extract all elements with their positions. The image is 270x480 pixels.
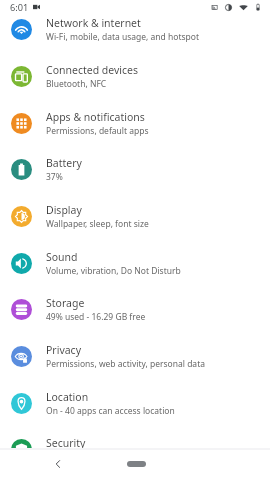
staticText: Wi-Fi, mobile, data usage, and hotspot [46, 31, 199, 43]
staticText: Permissions, web activity, personal data [46, 358, 205, 370]
staticText: Display [46, 203, 82, 217]
staticText: Wallpaper, sleep, font size [46, 218, 149, 230]
staticText: Sound [46, 250, 78, 264]
staticText: Security [46, 436, 86, 449]
staticText: Location [46, 390, 89, 404]
button[interactable]: Storage [0, 286, 270, 333]
button[interactable]: Apps & notifications [0, 100, 270, 147]
button[interactable]: Connected devices [0, 53, 270, 100]
staticText: On - 40 apps can access location [46, 405, 175, 417]
button[interactable]: Home [127, 461, 146, 467]
staticText: Privacy [46, 343, 82, 357]
button[interactable]: Security [0, 426, 270, 449]
button[interactable]: Display [0, 193, 270, 240]
staticText: Battery [46, 156, 82, 170]
staticText: Permissions, default apps [46, 125, 149, 137]
staticText: 37% [46, 171, 63, 183]
staticText: Apps & notifications [46, 110, 145, 124]
staticText: Volume, vibration, Do Not Disturb [46, 265, 181, 277]
staticText: 6:01 [10, 1, 29, 14]
staticText: Storage [46, 296, 85, 310]
staticText: Connected devices [46, 63, 139, 77]
button[interactable]: Sound [0, 240, 270, 287]
staticText: Network & internet [46, 16, 141, 30]
staticText: Bluetooth, NFC [46, 78, 107, 90]
button[interactable]: Location [0, 380, 270, 427]
staticText: 49% used - 16.29 GB free [46, 311, 146, 323]
button[interactable]: Battery [0, 146, 270, 193]
button[interactable]: Network & internet [0, 6, 270, 53]
button[interactable]: Privacy [0, 333, 270, 380]
button[interactable]: Back [49, 455, 67, 473]
